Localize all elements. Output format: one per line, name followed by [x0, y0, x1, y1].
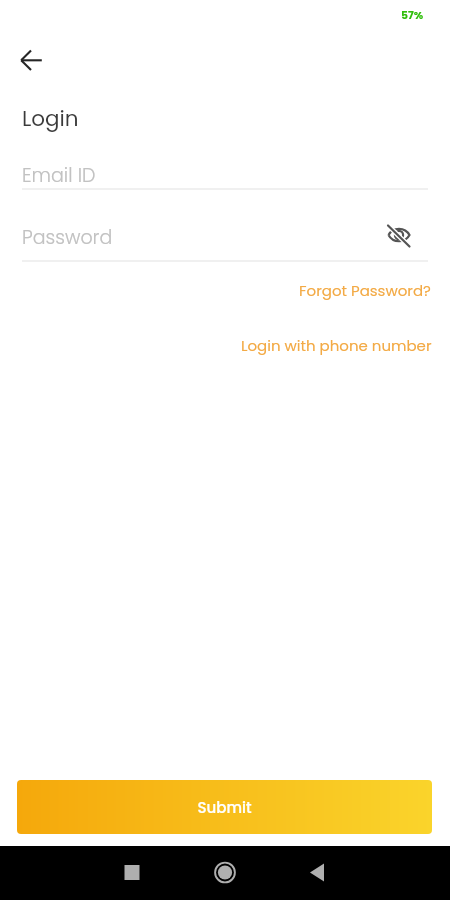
button[interactable]: Login with phone number — [241, 335, 432, 356]
button[interactable]: Show password — [383, 219, 415, 251]
staticText: Login with phone number — [241, 335, 432, 356]
button[interactable]: Email ID — [22, 158, 428, 190]
staticText: Email ID — [22, 162, 96, 189]
button[interactable]: Home — [200, 854, 250, 900]
staticText: Forgot Password? — [299, 280, 431, 301]
staticText: 57% — [401, 8, 424, 23]
button[interactable]: Forgot Password? — [299, 280, 431, 301]
button[interactable]: Back — [292, 854, 342, 900]
staticText: Password — [22, 224, 113, 251]
staticText: Submit — [197, 797, 252, 818]
button[interactable]: Recent apps — [107, 854, 157, 900]
button[interactable]: Submit — [17, 780, 432, 834]
staticText: Login — [22, 103, 79, 133]
button[interactable]: Navigate back — [4, 43, 37, 76]
